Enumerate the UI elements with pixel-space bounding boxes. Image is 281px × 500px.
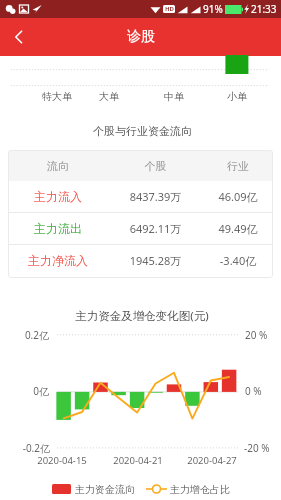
staticText: -0.2亿	[22, 441, 50, 455]
staticText: 8437.39万	[108, 189, 203, 204]
staticText: 主力净流入	[8, 253, 108, 268]
staticText: 主力增仓占比	[170, 483, 230, 496]
staticText: 0.2亿	[24, 328, 49, 342]
staticText: 6492.11万	[108, 221, 203, 236]
staticText: 主力流入	[8, 189, 108, 204]
staticText: 诊股	[127, 28, 155, 46]
staticText: -20 %	[244, 441, 270, 455]
staticText: 流向	[8, 159, 108, 173]
button[interactable]: 流向	[8, 150, 273, 278]
staticText: 大单	[99, 90, 119, 103]
staticText: 中单	[164, 90, 184, 103]
staticText: 49.49亿	[203, 221, 273, 236]
staticText: 0 %	[245, 384, 262, 398]
staticText: 2020-04-21	[113, 454, 163, 467]
button[interactable]: 主力资金流向	[0, 481, 281, 497]
staticText: 0亿	[33, 384, 49, 398]
staticText: 小单	[227, 90, 247, 103]
staticText: 46.09亿	[203, 189, 273, 204]
button[interactable]: Back	[0, 18, 38, 56]
staticText: 行业	[203, 159, 273, 173]
staticText: 特大单	[42, 90, 72, 103]
staticText: HD	[165, 5, 174, 13]
staticText: 91%	[203, 2, 223, 16]
staticText: 1945.28万	[108, 253, 203, 268]
staticText: 个股与行业资金流向	[93, 124, 192, 138]
staticText: 2020-04-27	[187, 454, 237, 467]
staticText: 2020-04-15	[37, 454, 87, 467]
staticText: 主力流出	[8, 221, 108, 236]
staticText: 20 %	[245, 328, 268, 342]
staticText: 个股	[108, 159, 203, 173]
staticText: 21:33	[251, 2, 277, 16]
staticText: -3.40亿	[203, 253, 273, 268]
staticText: 主力资金流向	[75, 483, 135, 496]
staticText: 主力资金及增仓变化图(元)	[75, 308, 209, 324]
